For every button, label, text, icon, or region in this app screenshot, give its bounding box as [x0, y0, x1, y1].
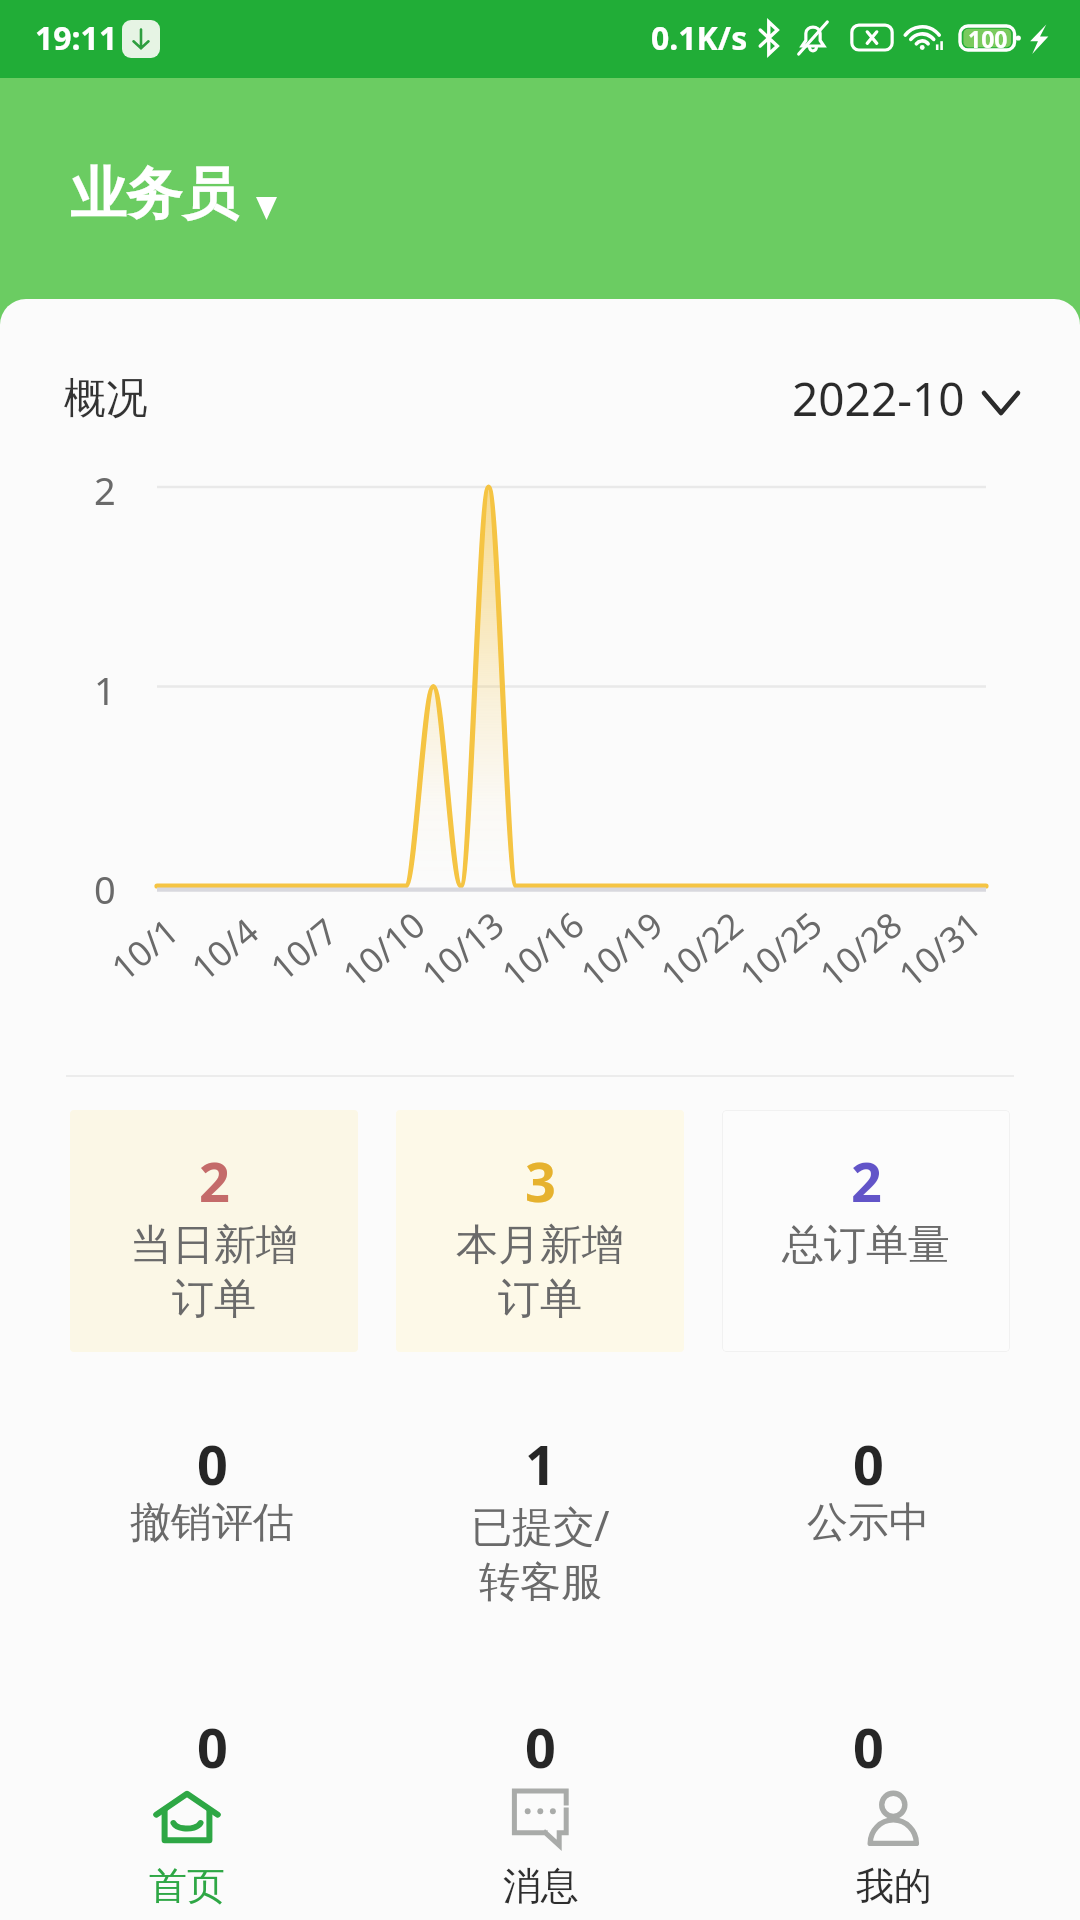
staticText: 10/1	[101, 907, 189, 991]
staticText: 2022-10	[792, 367, 965, 430]
staticText: 已提交/ 转客服	[471, 1497, 610, 1608]
button[interactable]: 消息	[364, 1765, 717, 1920]
staticText: 3	[525, 1144, 556, 1218]
staticText: 当日新增 订单	[130, 1219, 298, 1325]
staticText: 2	[851, 1144, 882, 1218]
staticText: 0	[197, 1710, 228, 1784]
staticText: 0	[853, 1710, 884, 1784]
button[interactable]: Downloads	[122, 20, 160, 58]
staticText: 业务员	[70, 159, 238, 230]
staticText: 我的	[856, 1862, 932, 1910]
button[interactable]: 2022-10	[770, 357, 1040, 440]
button[interactable]: 0	[704, 1417, 1032, 1563]
staticText: 10/7	[260, 907, 348, 991]
staticText: 0	[197, 1427, 228, 1501]
staticText: 10/28	[810, 900, 912, 998]
staticText: 公示中	[807, 1497, 930, 1549]
staticText: 10/22	[651, 900, 753, 998]
staticText: 概况	[64, 372, 148, 425]
staticText: 首页	[149, 1862, 225, 1910]
staticText: 本月新增 订单	[456, 1219, 624, 1325]
staticText: 撤销评估	[130, 1497, 294, 1549]
staticText: 10/19	[571, 900, 673, 998]
staticText: 1	[525, 1427, 556, 1501]
staticText: 10/13	[412, 900, 514, 998]
button[interactable]: 首页	[10, 1765, 364, 1920]
staticText: 10/16	[492, 900, 594, 998]
button[interactable]: 3	[396, 1110, 684, 1352]
button[interactable]: 已归档	[704, 1700, 1032, 1794]
button[interactable]: 已取消	[376, 1700, 704, 1794]
staticText: 消息	[503, 1862, 579, 1910]
staticText: 2	[199, 1144, 230, 1218]
staticText: 0	[94, 863, 116, 915]
button[interactable]: 我的	[717, 1765, 1070, 1920]
button[interactable]: 2	[70, 1110, 358, 1352]
button[interactable]: 已完成	[48, 1700, 376, 1794]
staticText: 10/10	[333, 900, 435, 998]
staticText: 1	[94, 664, 116, 716]
staticText: 总订单量	[782, 1219, 950, 1272]
staticText: 19:11	[35, 16, 118, 60]
staticText: 100	[968, 23, 1008, 54]
button[interactable]: 0	[48, 1417, 376, 1563]
button[interactable]: 2	[722, 1110, 1010, 1352]
staticText: 10/4	[181, 907, 269, 991]
staticText: 10/25	[730, 900, 832, 998]
button[interactable]: 1	[376, 1417, 704, 1622]
staticText: 0	[853, 1427, 884, 1501]
staticText: 2	[94, 464, 116, 516]
staticText: 0.1K/s	[651, 16, 748, 60]
button[interactable]: 业务员	[46, 147, 302, 242]
staticText: 0	[525, 1710, 556, 1784]
staticText: 10/31	[889, 900, 991, 998]
